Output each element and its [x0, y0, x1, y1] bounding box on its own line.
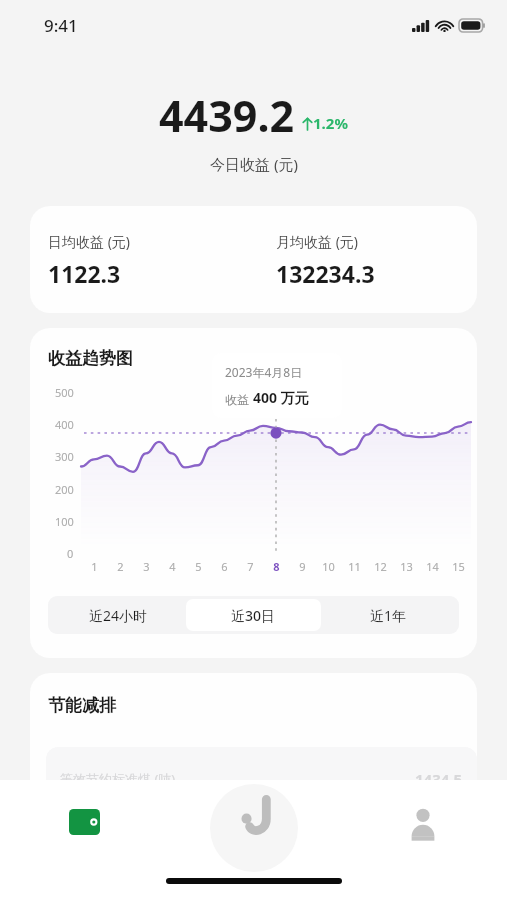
staticText: 今日收益 (元) [210, 154, 298, 174]
staticText: 6 [221, 559, 228, 574]
staticText: 1434.5 [415, 769, 463, 789]
button[interactable]: 日均收益 (元) [30, 206, 477, 313]
staticText: 1 [91, 559, 98, 574]
staticText: 收益趋势图 [48, 348, 133, 369]
staticText: 5 [195, 559, 202, 574]
staticText: 300 [55, 449, 74, 464]
staticText: 近1年 [370, 606, 407, 625]
button[interactable]: 近24小时 [51, 599, 186, 631]
staticText: 9 [299, 559, 306, 574]
staticText: 2 [117, 559, 124, 574]
staticText: 1122.3 [48, 258, 121, 289]
staticText: 8 [273, 559, 280, 574]
staticText: 2023年4月8日 [225, 364, 303, 380]
staticText: 10 [322, 559, 335, 574]
staticText: 近30日 [231, 606, 276, 625]
staticText: 日均收益 (元) [48, 232, 131, 251]
staticText: 132234.3 [276, 258, 375, 289]
button[interactable]: 近30日 [186, 599, 321, 631]
staticText: 等效节约标准煤 (吨) [60, 770, 176, 788]
staticText: 15 [452, 559, 465, 574]
staticText: 3 [143, 559, 150, 574]
staticText: 12 [374, 559, 387, 574]
staticText: 月均收益 (元) [276, 232, 359, 251]
button[interactable]: 我的 [338, 780, 507, 864]
staticText: 0 [67, 546, 74, 561]
staticText: 4439.2 [159, 86, 295, 145]
staticText: 近24小时 [89, 606, 148, 625]
staticText: 1.2% [313, 113, 348, 133]
button[interactable]: 首页 [169, 780, 338, 864]
button[interactable]: 近1年 [321, 599, 456, 631]
staticText: 400 万元 [253, 388, 309, 407]
staticText: 100 [55, 514, 74, 529]
staticText: 7 [247, 559, 254, 574]
staticText: 500 [55, 385, 74, 400]
staticText: 13 [400, 559, 413, 574]
staticText: 400 [55, 417, 74, 432]
staticText: 11 [348, 559, 361, 574]
staticText: 9:41 [44, 14, 78, 37]
staticText: 节能减排 [48, 695, 116, 716]
staticText: 14 [426, 559, 439, 574]
staticText: 收益 [225, 391, 253, 407]
staticText: 4 [169, 559, 176, 574]
staticText: 200 [55, 482, 74, 497]
button[interactable]: 收益 [0, 780, 169, 864]
